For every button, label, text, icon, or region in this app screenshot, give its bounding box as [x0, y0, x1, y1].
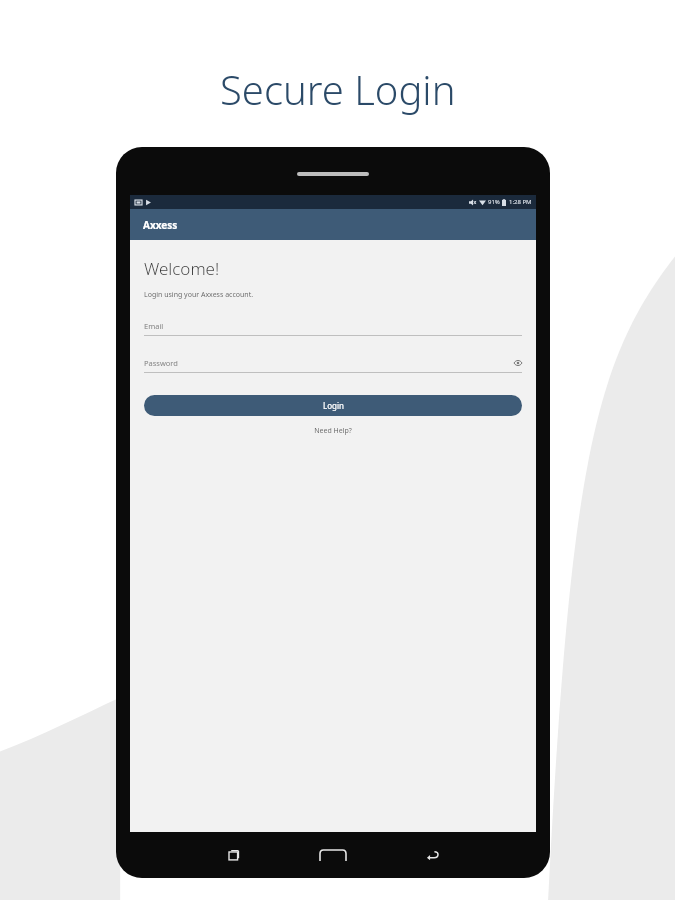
staticText: Login using your Axxess account. — [144, 290, 254, 300]
button[interactable]: Email — [144, 320, 522, 336]
other: Show password — [514, 359, 522, 367]
staticText: Secure Login — [220, 62, 456, 116]
button[interactable]: Need Help? — [144, 426, 522, 436]
button[interactable]: Back — [419, 842, 445, 868]
staticText: Login — [323, 400, 344, 411]
staticText: Axxess — [143, 218, 178, 232]
staticText: 1:28 PM — [509, 198, 532, 206]
button[interactable]: Recent apps — [221, 842, 247, 868]
staticText: 91% — [488, 198, 500, 206]
button[interactable]: Login — [144, 395, 522, 416]
staticText: Welcome! — [144, 257, 220, 280]
staticText: Password — [144, 358, 178, 368]
staticText: Need Help? — [314, 426, 352, 436]
button[interactable]: Password — [144, 357, 522, 373]
button[interactable]: Home — [313, 842, 353, 868]
staticText: Email — [144, 321, 164, 331]
